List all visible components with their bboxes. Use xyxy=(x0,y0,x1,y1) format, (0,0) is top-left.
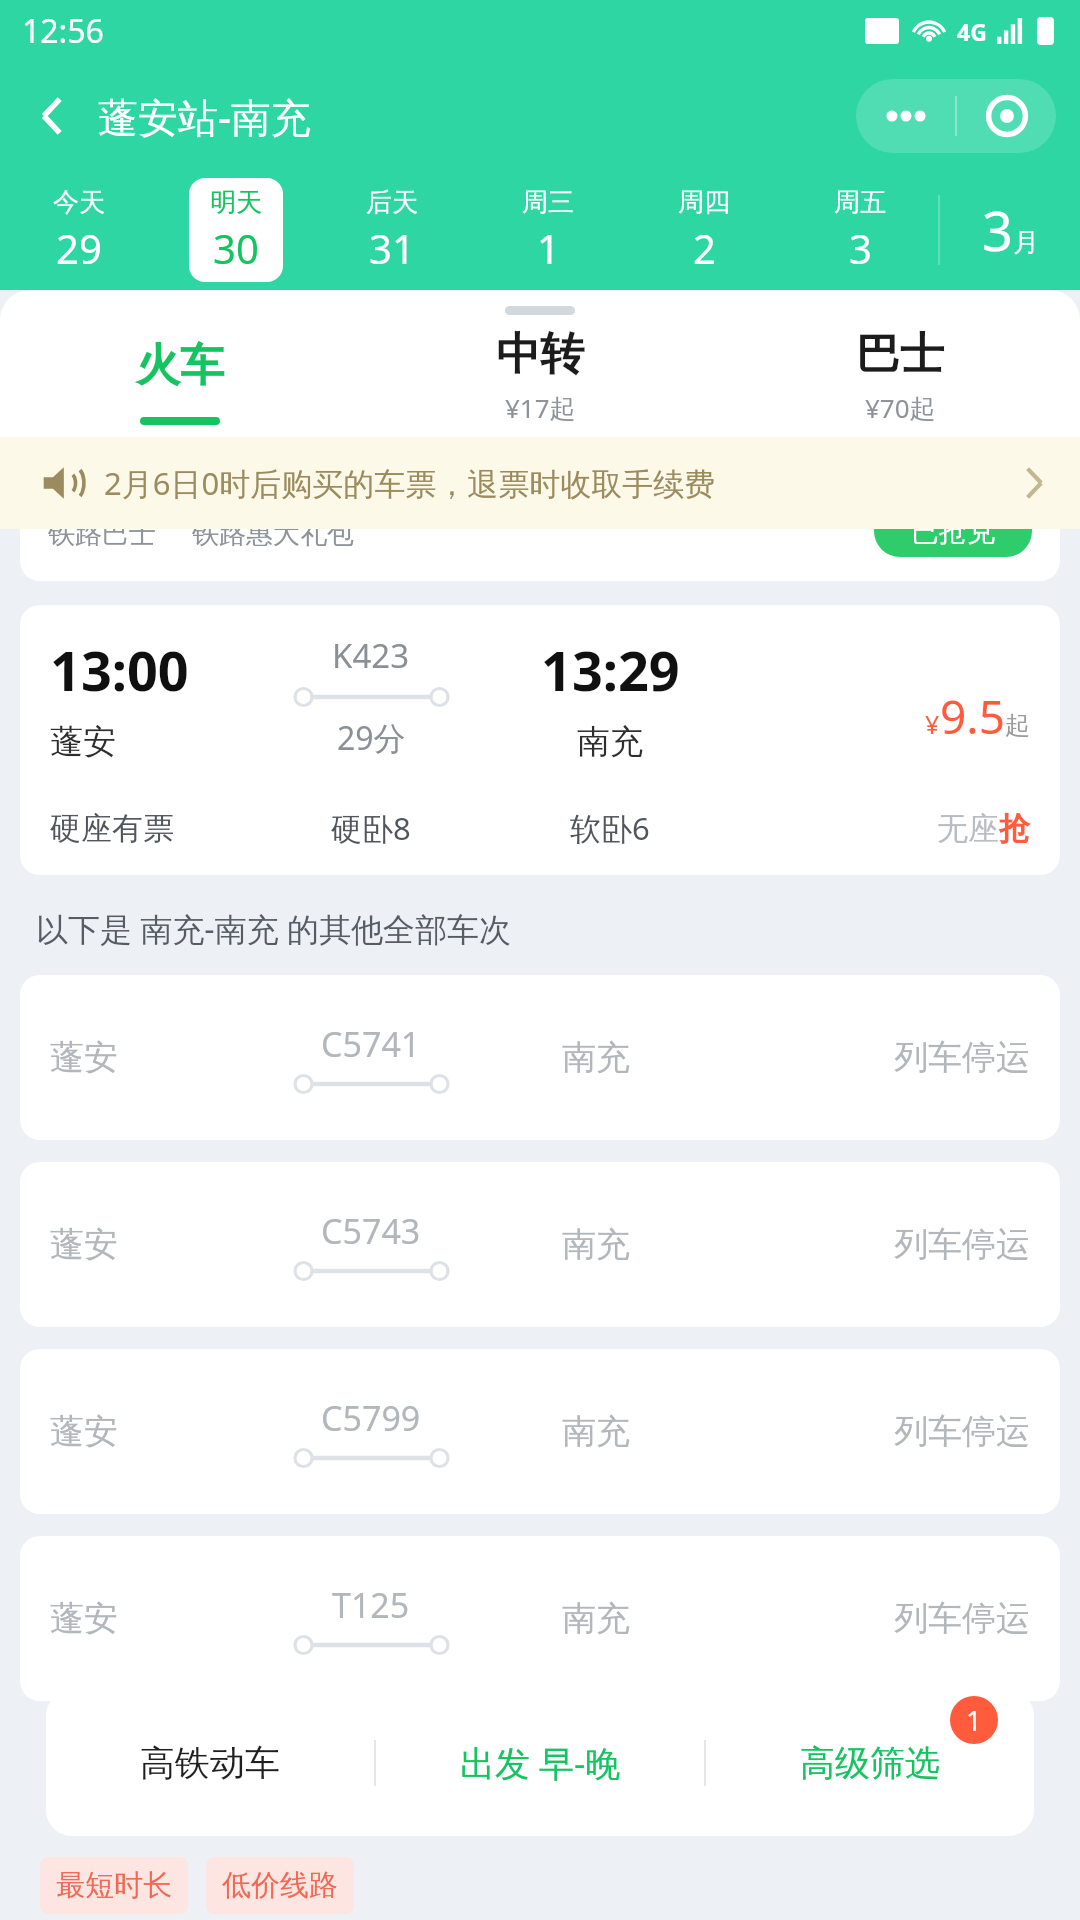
button[interactable]: 3 xyxy=(940,170,1080,290)
button[interactable]: 周三 xyxy=(470,170,626,290)
staticText: 巴士 xyxy=(856,327,944,382)
staticText: 出发 早-晚 xyxy=(460,1739,621,1787)
staticText: ¥ xyxy=(925,707,940,741)
button[interactable]: 蓬安 xyxy=(20,1349,1060,1514)
staticText: 周三 xyxy=(522,186,574,219)
staticText: 2月6日0时后购买的车票，退票时收取手续费 xyxy=(104,462,716,504)
button[interactable]: 火车 xyxy=(0,315,360,437)
button[interactable]: Locate xyxy=(957,79,1056,153)
staticText: C5799 xyxy=(321,1395,421,1441)
staticText: 抢 xyxy=(999,809,1030,848)
staticText: 周四 xyxy=(678,186,730,219)
staticText: 起 xyxy=(1005,710,1030,741)
staticText: 月 xyxy=(1013,226,1039,259)
staticText: 蓬安 xyxy=(50,1036,246,1079)
button[interactable]: 最短时长 xyxy=(40,1857,188,1914)
staticText: 硬卧8 xyxy=(331,807,411,849)
staticText: 3 xyxy=(849,221,872,275)
button[interactable]: 蓬安 xyxy=(20,975,1060,1140)
staticText: C5743 xyxy=(321,1208,421,1254)
staticText: 蓬安站-南充 xyxy=(98,89,311,144)
staticText: 低价线路 xyxy=(222,1867,338,1904)
button[interactable]: 蓬安 xyxy=(20,1536,1060,1701)
staticText: ¥17起 xyxy=(505,390,576,426)
button[interactable]: 中转 xyxy=(360,315,720,437)
button[interactable]: 已抢兑 xyxy=(874,529,1032,557)
staticText: 无座 xyxy=(937,809,999,848)
button[interactable]: Back xyxy=(20,84,84,148)
staticText: 南充 xyxy=(577,721,643,763)
button[interactable]: More options xyxy=(856,79,955,153)
staticText: 南充 xyxy=(562,1410,630,1453)
button[interactable]: 今天 xyxy=(0,170,157,290)
button[interactable]: 后天 xyxy=(314,170,470,290)
button[interactable]: 2月6日0时后购买的车票，退票时收取手续费 xyxy=(0,437,1080,529)
staticText: 4G xyxy=(957,16,987,47)
button[interactable]: 周四 xyxy=(626,170,782,290)
staticText: 列车停运 xyxy=(894,1223,1030,1266)
staticText: 今天 xyxy=(53,186,105,219)
button[interactable]: 铁路巴士 xyxy=(20,529,1060,581)
staticText: 中转 xyxy=(496,327,584,382)
staticText: 铁路巴士 xyxy=(48,529,156,551)
staticText: 30 xyxy=(213,221,259,275)
staticText: 后天 xyxy=(366,186,418,219)
staticText: 12:56 xyxy=(22,9,104,53)
button[interactable]: 13:00 xyxy=(20,605,1060,875)
staticText: 列车停运 xyxy=(894,1036,1030,1079)
staticText: 29 xyxy=(56,221,102,275)
staticText: 列车停运 xyxy=(894,1410,1030,1453)
staticText: 蓬安 xyxy=(50,1597,246,1640)
staticText: 周五 xyxy=(834,186,886,219)
staticText: 13:00 xyxy=(50,633,189,707)
button[interactable]: 周五 xyxy=(782,170,938,290)
button[interactable]: 出发 早-晚 xyxy=(376,1690,704,1836)
button[interactable]: 巴士 xyxy=(720,315,1080,437)
staticText: 软卧6 xyxy=(570,807,650,849)
staticText: 9.5 xyxy=(940,685,1005,748)
staticText: 硬座有票 xyxy=(50,809,246,848)
staticText: 高铁动车 xyxy=(140,1741,280,1785)
staticText: 1 xyxy=(966,1702,982,1739)
staticText: K423 xyxy=(332,633,410,678)
staticText: 明天 xyxy=(210,186,262,219)
staticText: 高级筛选 xyxy=(800,1741,940,1785)
staticText: 29分 xyxy=(337,716,406,760)
button[interactable]: 高级筛选 xyxy=(706,1690,1034,1836)
staticText: 13:29 xyxy=(541,633,680,707)
staticText: 2 xyxy=(693,221,716,275)
staticText: ¥70起 xyxy=(865,390,936,426)
staticText: 南充 xyxy=(562,1036,630,1079)
staticText: 蓬安 xyxy=(50,721,116,763)
staticText: 最短时长 xyxy=(56,1867,172,1904)
staticText: 蓬安 xyxy=(50,1223,246,1266)
button[interactable]: 明天 xyxy=(157,170,314,290)
staticText: C5741 xyxy=(321,1021,421,1067)
staticText: 3 xyxy=(982,193,1013,267)
button[interactable]: 高铁动车 xyxy=(46,1690,374,1836)
staticText: 南充 xyxy=(562,1597,630,1640)
staticText: T125 xyxy=(332,1582,410,1628)
staticText: 南充 xyxy=(562,1223,630,1266)
staticText: 列车停运 xyxy=(894,1597,1030,1640)
button[interactable]: 蓬安 xyxy=(20,1162,1060,1327)
staticText: 已抢兑 xyxy=(911,529,995,549)
staticText: 蓬安 xyxy=(50,1410,246,1453)
staticText: 以下是 南充-南充 的其他全部车次 xyxy=(36,907,511,951)
button[interactable]: 低价线路 xyxy=(206,1857,354,1914)
staticText: 火车 xyxy=(136,338,224,393)
staticText: 31 xyxy=(369,221,415,275)
staticText: 铁路惠大礼包 xyxy=(192,529,354,551)
staticText: 1 xyxy=(537,221,560,275)
